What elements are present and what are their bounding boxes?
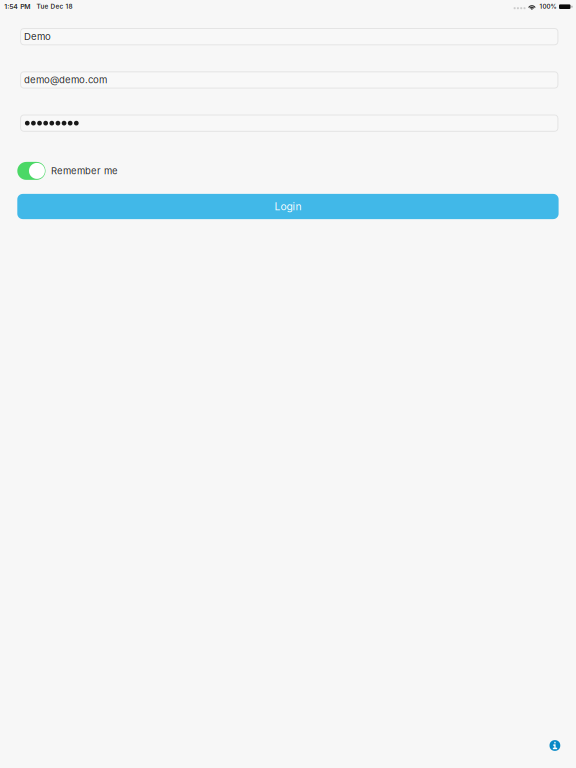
staticText: Remember me xyxy=(51,165,118,177)
button[interactable]: Remember me xyxy=(51,165,118,177)
staticText: 100% xyxy=(539,3,556,10)
staticText: Demo xyxy=(24,31,51,42)
button[interactable]: Username xyxy=(20,28,558,45)
staticText: Tue Dec 18 xyxy=(37,3,73,10)
button[interactable]: Information xyxy=(547,738,562,753)
staticText: demo@demo.com xyxy=(24,74,107,85)
button[interactable]: Password xyxy=(20,114,558,132)
button[interactable]: Email xyxy=(20,71,558,89)
staticText: 1:54 PM xyxy=(4,2,30,11)
button[interactable]: Login xyxy=(17,194,559,219)
button[interactable]: Remember me toggle xyxy=(17,162,45,180)
staticText: Login xyxy=(274,200,301,213)
